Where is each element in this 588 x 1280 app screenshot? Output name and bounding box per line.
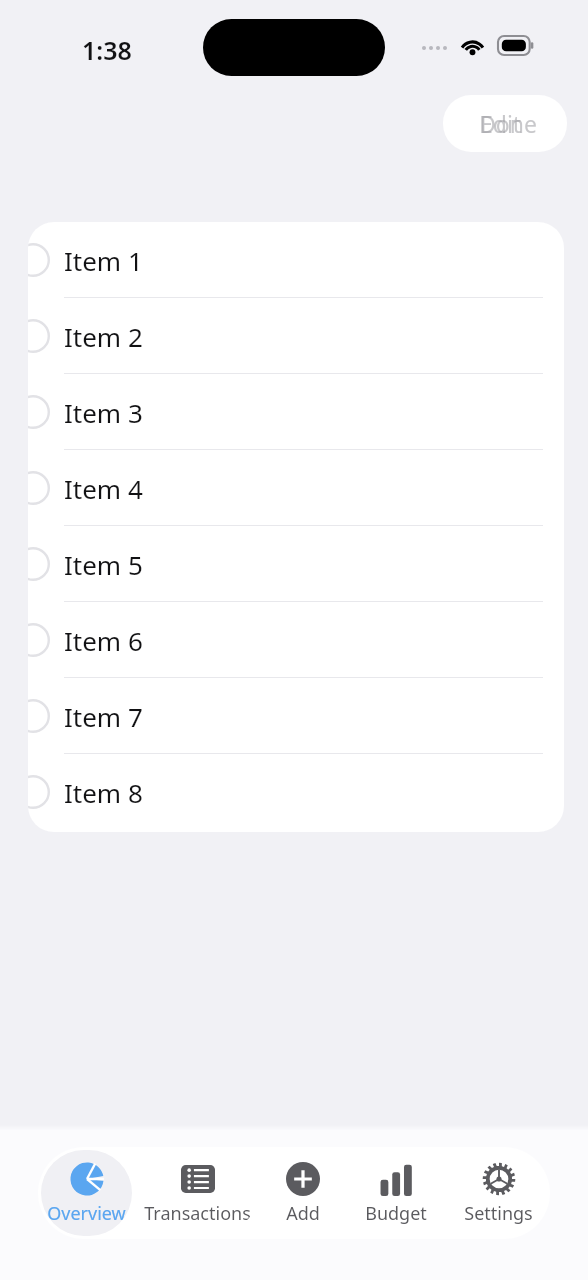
button[interactable]: Item 3 xyxy=(28,374,564,450)
staticText: Item 4 xyxy=(64,471,143,506)
staticText: 1:38 xyxy=(82,33,132,67)
button[interactable]: Item 6 xyxy=(28,602,564,678)
staticText: Item 8 xyxy=(64,775,143,810)
staticText: Item 2 xyxy=(64,319,143,354)
staticText: Item 1 xyxy=(64,243,143,278)
staticText: Add xyxy=(286,1201,320,1226)
button[interactable]: Overview xyxy=(41,1150,132,1236)
staticText: Budget xyxy=(365,1201,427,1226)
staticText: Settings xyxy=(464,1201,533,1226)
staticText: Edit xyxy=(480,108,522,139)
staticText: Item 3 xyxy=(64,395,143,430)
button[interactable]: Budget xyxy=(349,1150,443,1236)
staticText: Transactions xyxy=(144,1201,251,1226)
button[interactable]: Add xyxy=(263,1150,343,1236)
button[interactable]: Item 2 xyxy=(28,298,564,374)
button[interactable]: Item 8 xyxy=(28,754,564,830)
staticText: Item 7 xyxy=(64,699,143,734)
button[interactable]: Transactions xyxy=(138,1150,257,1236)
staticText: Overview xyxy=(47,1201,126,1226)
button[interactable]: Item 7 xyxy=(28,678,564,754)
staticText: Item 5 xyxy=(64,547,143,582)
button[interactable]: Edit xyxy=(443,95,567,152)
button[interactable]: Item 5 xyxy=(28,526,564,602)
staticText: Item 6 xyxy=(64,623,143,658)
staticText: Done xyxy=(479,108,537,139)
button[interactable]: Item 4 xyxy=(28,450,564,526)
button[interactable]: Settings xyxy=(449,1150,547,1236)
button[interactable]: Item 1 xyxy=(28,222,564,298)
